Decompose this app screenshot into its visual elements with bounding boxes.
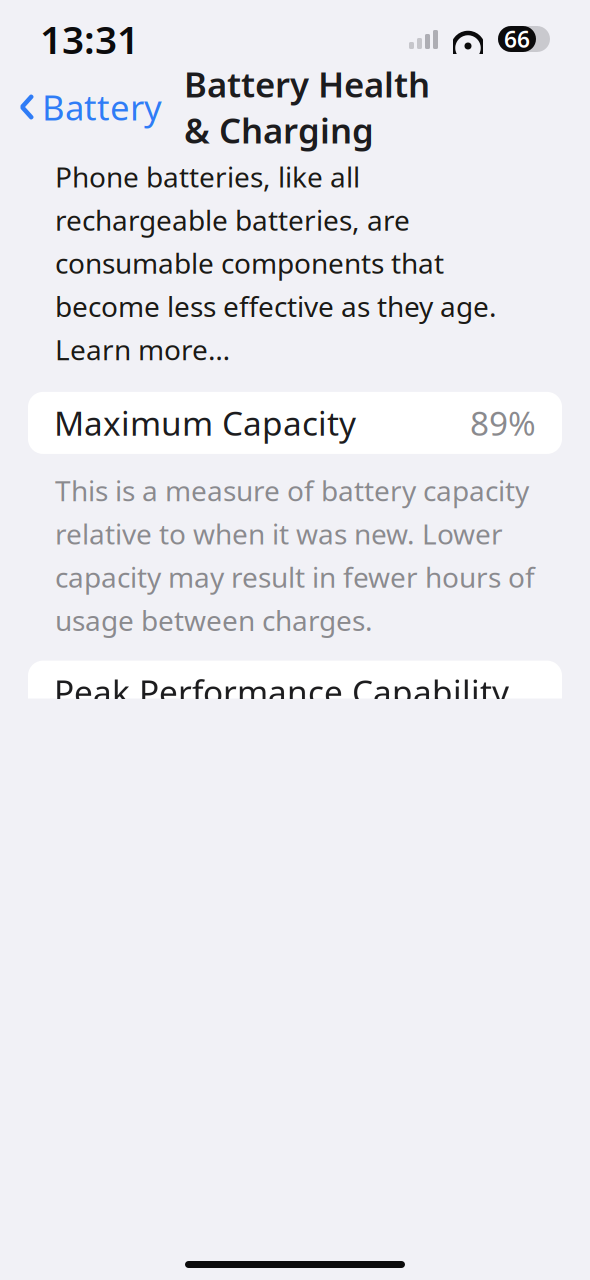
staticText: Maximum Capacity bbox=[54, 401, 356, 445]
staticText: To reduce battery aging, iPhone learns f… bbox=[55, 1053, 522, 1262]
button[interactable]: Maximum Capacity bbox=[28, 392, 562, 454]
button[interactable]: Battery bbox=[18, 78, 162, 136]
staticText: Battery Health & Charging bbox=[184, 61, 430, 153]
staticText: Peak Performance Capability bbox=[54, 669, 509, 714]
staticText: Phone batteries, like all rechargeable b… bbox=[55, 158, 497, 368]
staticText: This is a measure of battery capacity re… bbox=[55, 472, 535, 639]
button[interactable]: Peak Performance Capability bbox=[28, 661, 562, 723]
staticText: Battery bbox=[42, 84, 162, 130]
staticText: 13:31 bbox=[40, 13, 139, 65]
staticText: 66 bbox=[504, 24, 530, 54]
staticText: 89% bbox=[470, 401, 536, 445]
